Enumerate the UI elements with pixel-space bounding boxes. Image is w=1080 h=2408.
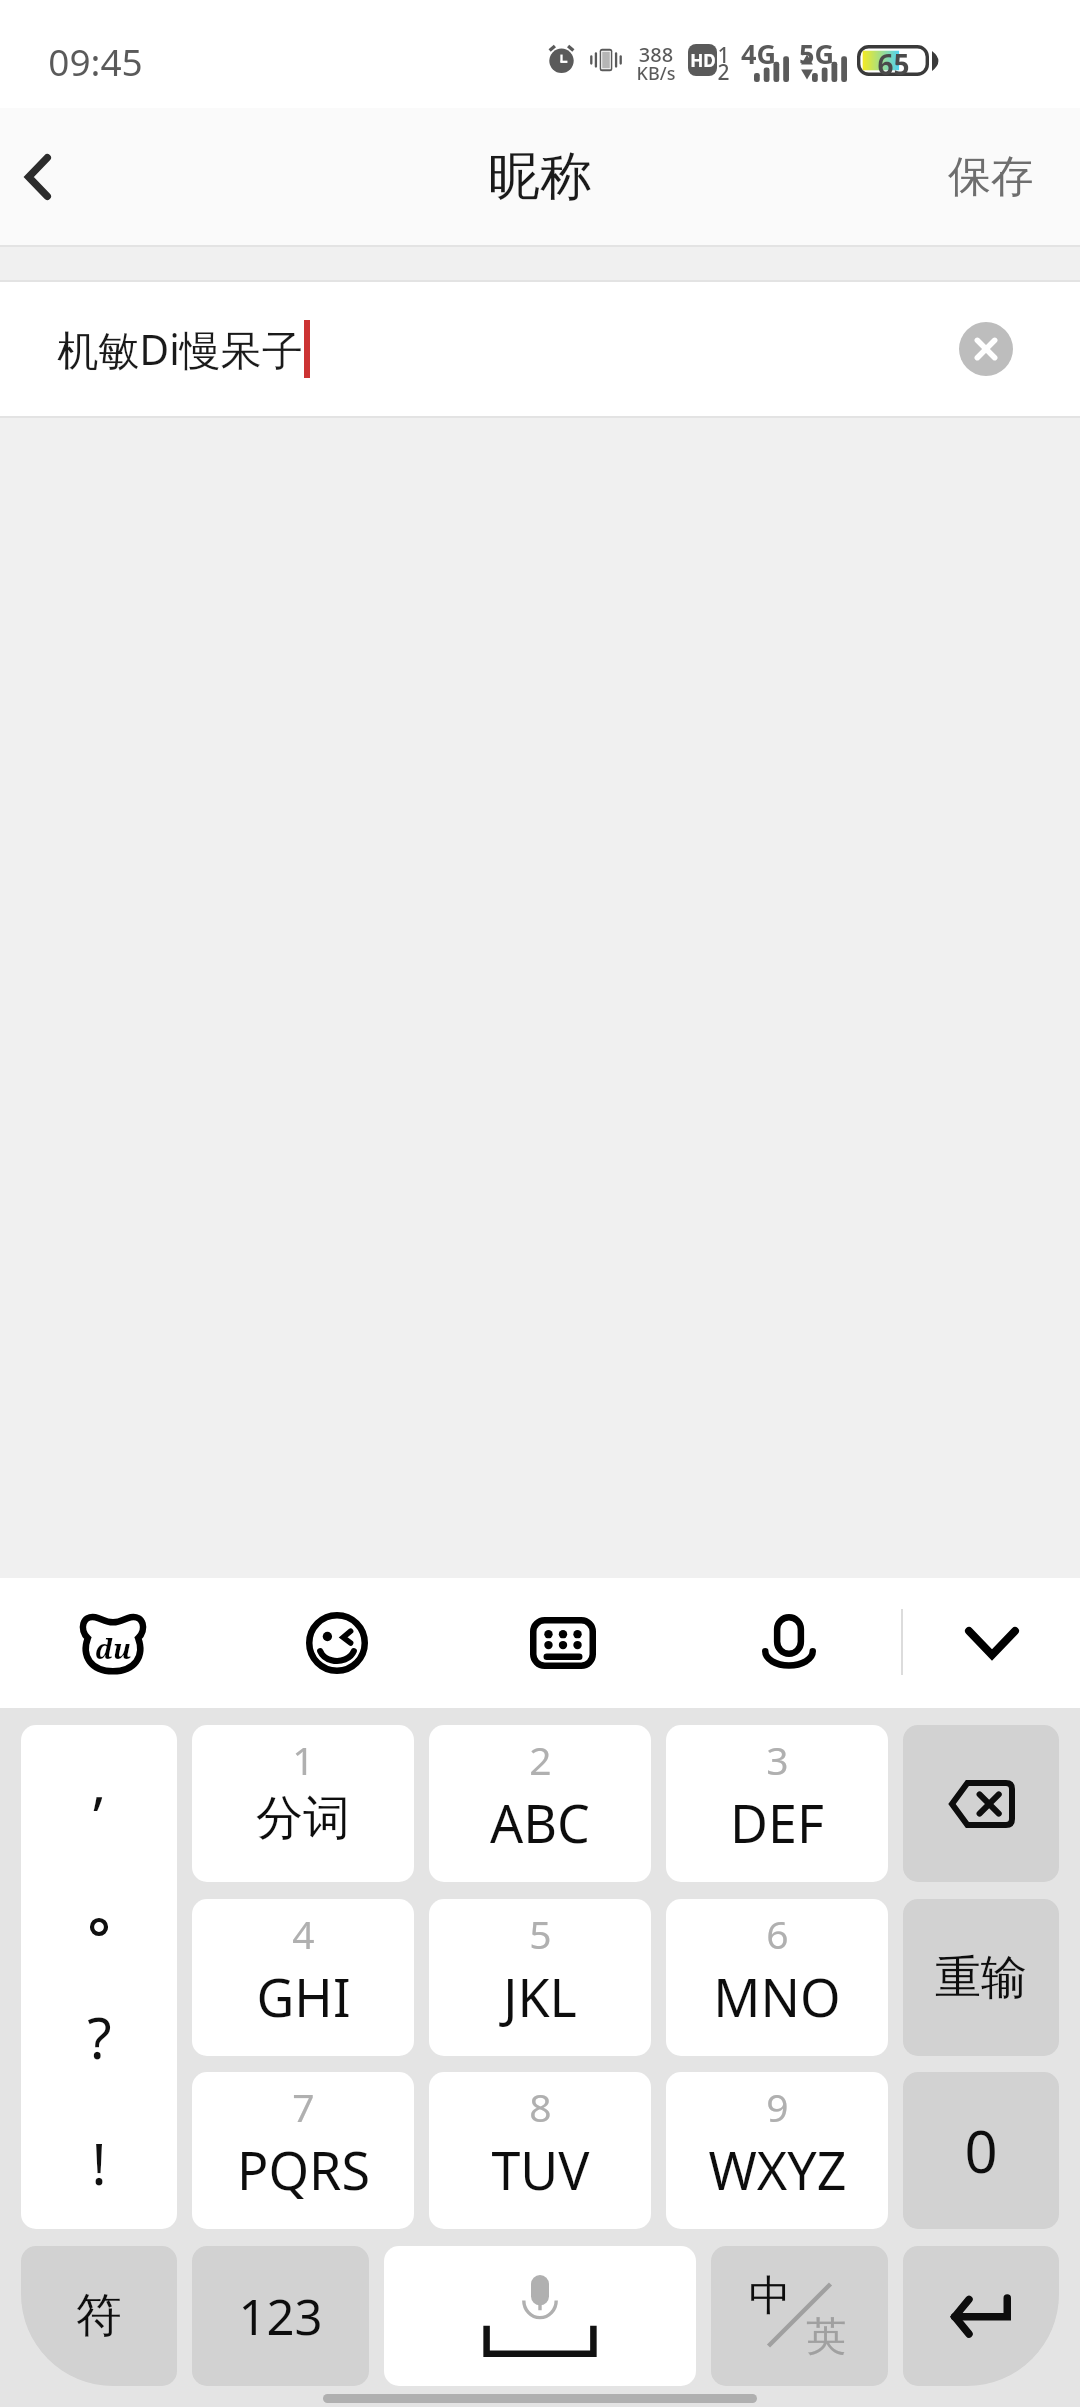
staticText: 4 (292, 1907, 315, 1960)
button[interactable]: Voice input (677, 1578, 901, 1708)
button[interactable]: Punctuation (21, 1725, 177, 2229)
staticText: 1 (292, 1733, 315, 1786)
button[interactable]: Back (0, 108, 108, 245)
button[interactable]: 0 (903, 2072, 1059, 2229)
staticText: du (95, 1630, 132, 1667)
staticText: 1 (717, 41, 730, 70)
staticText: 机敏Di慢呆子 (57, 321, 303, 377)
button[interactable]: 5 (429, 1899, 651, 2056)
staticText: 2 (529, 1733, 552, 1786)
staticText: 保存 (948, 150, 1034, 204)
staticText: 3 (766, 1733, 789, 1786)
staticText: 8 (529, 2080, 552, 2133)
staticText: JKL (503, 1961, 577, 2032)
button[interactable]: 123 (192, 2246, 369, 2386)
button[interactable]: 9 (666, 2072, 888, 2229)
staticText: 388 (636, 41, 676, 68)
staticText: 4G (741, 35, 776, 72)
button[interactable]: Enter (903, 2246, 1059, 2386)
staticText: 7 (292, 2080, 315, 2133)
button[interactable]: Baidu input (0, 1578, 225, 1708)
button[interactable]: 4 (192, 1899, 414, 2056)
button[interactable]: Emoji (225, 1578, 449, 1708)
staticText: GHI (256, 1961, 351, 2032)
staticText: DEF (730, 1787, 824, 1858)
staticText: 英 (806, 2311, 846, 2361)
staticText: 9 (766, 2080, 789, 2133)
button[interactable]: 1 (192, 1725, 414, 1882)
staticText: 符 (76, 2287, 122, 2345)
staticText: 5 (529, 1907, 552, 1960)
staticText: WXYZ (708, 2134, 847, 2205)
button[interactable]: Keyboard layout (451, 1578, 675, 1708)
staticText: 09:45 (48, 36, 143, 86)
button[interactable]: 3 (666, 1725, 888, 1882)
staticText: , (91, 1743, 107, 1821)
staticText: ? (87, 1999, 112, 2075)
button[interactable]: 符 (21, 2246, 177, 2386)
button[interactable]: 7 (192, 2072, 414, 2229)
button[interactable]: 保存 (948, 108, 1034, 245)
button[interactable]: Space (384, 2246, 696, 2386)
staticText: 2 (717, 58, 730, 87)
staticText: MNO (713, 1961, 841, 2032)
staticText: PQRS (237, 2134, 370, 2205)
button[interactable]: Clear (959, 322, 1013, 376)
button[interactable]: Backspace (903, 1725, 1059, 1882)
staticText: 昵称 (488, 144, 592, 210)
staticText: 5G (799, 35, 834, 72)
staticText: 6 (766, 1907, 789, 1960)
staticText: TUV (491, 2134, 590, 2205)
button[interactable]: 重输 (903, 1899, 1059, 2056)
button[interactable]: 2 (429, 1725, 651, 1882)
staticText: 重输 (935, 1949, 1027, 2007)
staticText: 分词 (256, 1789, 350, 1848)
button[interactable]: Chinese / English (711, 2246, 888, 2386)
staticText: 中 (749, 2270, 791, 2323)
staticText: 123 (238, 2283, 323, 2350)
button[interactable]: 6 (666, 1899, 888, 2056)
staticText: ! (91, 2125, 107, 2201)
staticText: ABC (490, 1787, 590, 1858)
staticText: HD (690, 49, 716, 72)
staticText: 65 (877, 45, 910, 76)
staticText: KB/s (636, 61, 676, 86)
button[interactable]: 8 (429, 2072, 651, 2229)
button[interactable]: Hide keyboard (903, 1578, 1080, 1708)
staticText: 0 (964, 2111, 998, 2190)
